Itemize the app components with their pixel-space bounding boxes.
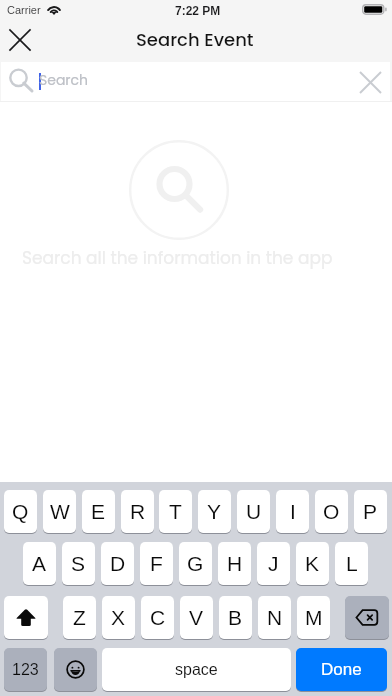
staticText: V: [189, 606, 204, 629]
staticText: U: [246, 500, 262, 523]
button[interactable]: L: [335, 542, 368, 585]
staticText: Q: [12, 500, 29, 523]
button[interactable]: Done: [296, 648, 387, 691]
button[interactable]: Search: [1, 62, 390, 101]
button[interactable]: W: [43, 490, 76, 533]
button[interactable]: I: [276, 490, 309, 533]
button[interactable]: E: [82, 490, 115, 533]
staticText: B: [228, 606, 243, 629]
button[interactable]: Y: [198, 490, 231, 533]
staticText: Carrier: [7, 4, 41, 16]
button[interactable]: J: [257, 542, 290, 585]
button[interactable]: O: [315, 490, 348, 533]
button[interactable]: S: [62, 542, 95, 585]
staticText: R: [130, 500, 146, 523]
staticText: Search Event: [136, 27, 254, 52]
button[interactable]: Z: [63, 596, 96, 639]
button[interactable]: Emoji keyboard: [54, 648, 97, 691]
staticText: H: [227, 552, 243, 575]
button[interactable]: Backspace: [345, 596, 389, 639]
staticText: W: [50, 500, 70, 523]
button[interactable]: M: [297, 596, 330, 639]
staticText: L: [346, 552, 358, 575]
button[interactable]: F: [140, 542, 173, 585]
staticText: 7:22 PM: [175, 4, 221, 17]
button[interactable]: K: [296, 542, 329, 585]
staticText: F: [150, 552, 163, 575]
staticText: Y: [207, 500, 222, 523]
staticText: E: [91, 500, 106, 523]
staticText: G: [187, 552, 204, 575]
staticText: Done: [321, 660, 362, 679]
button[interactable]: V: [180, 596, 213, 639]
button[interactable]: Close: [0, 24, 38, 60]
staticText: M: [305, 606, 323, 629]
button[interactable]: U: [237, 490, 270, 533]
staticText: X: [111, 606, 126, 629]
button[interactable]: 123: [4, 648, 47, 691]
staticText: O: [323, 500, 340, 523]
button[interactable]: Shift: [4, 596, 48, 639]
button[interactable]: R: [121, 490, 154, 533]
staticText: A: [32, 552, 47, 575]
button[interactable]: C: [141, 596, 174, 639]
button[interactable]: A: [23, 542, 56, 585]
staticText: N: [267, 606, 283, 629]
staticText: C: [150, 606, 166, 629]
staticText: 123: [12, 661, 39, 679]
button[interactable]: D: [101, 542, 134, 585]
staticText: Z: [73, 606, 86, 629]
button[interactable]: T: [159, 490, 192, 533]
staticText: J: [268, 552, 279, 575]
button[interactable]: P: [354, 490, 387, 533]
button[interactable]: space: [102, 648, 291, 691]
button[interactable]: G: [179, 542, 212, 585]
button[interactable]: B: [219, 596, 252, 639]
button[interactable]: H: [218, 542, 251, 585]
staticText: D: [110, 552, 126, 575]
staticText: Search all the information in the app: [22, 246, 333, 270]
button[interactable]: Clear search: [353, 66, 389, 98]
staticText: T: [169, 500, 182, 523]
button[interactable]: Q: [4, 490, 37, 533]
button[interactable]: N: [258, 596, 291, 639]
staticText: K: [305, 552, 320, 575]
staticText: space: [175, 661, 218, 679]
staticText: S: [71, 552, 86, 575]
staticText: I: [290, 500, 296, 523]
staticText: P: [363, 500, 378, 523]
button[interactable]: X: [102, 596, 135, 639]
staticText: Search: [39, 70, 89, 90]
